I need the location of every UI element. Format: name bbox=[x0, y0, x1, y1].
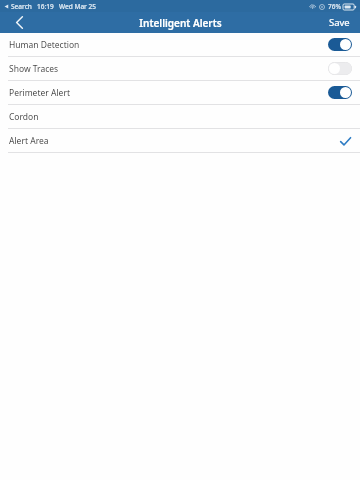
staticText: Human Detection bbox=[9, 39, 80, 51]
button[interactable]: Back bbox=[0, 12, 38, 33]
button[interactable]: Human Detection bbox=[0, 33, 360, 56]
button[interactable]: Toggle on bbox=[328, 86, 352, 99]
button[interactable]: Save bbox=[319, 12, 360, 33]
staticText: 16:19 bbox=[37, 2, 54, 11]
button[interactable]: Perimeter Alert bbox=[0, 81, 360, 104]
staticText: Wed Mar 25 bbox=[59, 2, 96, 11]
staticText: 76% bbox=[328, 2, 341, 11]
button[interactable]: Selected bbox=[338, 134, 352, 148]
staticText: Alert Area bbox=[9, 135, 49, 147]
button[interactable]: Alert Area bbox=[0, 129, 360, 152]
staticText: Cordon bbox=[9, 111, 39, 123]
staticText: Search bbox=[11, 2, 32, 11]
staticText: Perimeter Alert bbox=[9, 87, 70, 99]
button[interactable]: Show Traces bbox=[0, 57, 360, 80]
button[interactable]: Cordon bbox=[0, 105, 360, 128]
button[interactable]: Toggle off bbox=[328, 62, 352, 75]
button[interactable]: Toggle on bbox=[328, 38, 352, 51]
staticText: Intelligent Alerts bbox=[139, 16, 222, 30]
staticText: Save bbox=[329, 16, 350, 29]
staticText: Show Traces bbox=[9, 63, 59, 75]
